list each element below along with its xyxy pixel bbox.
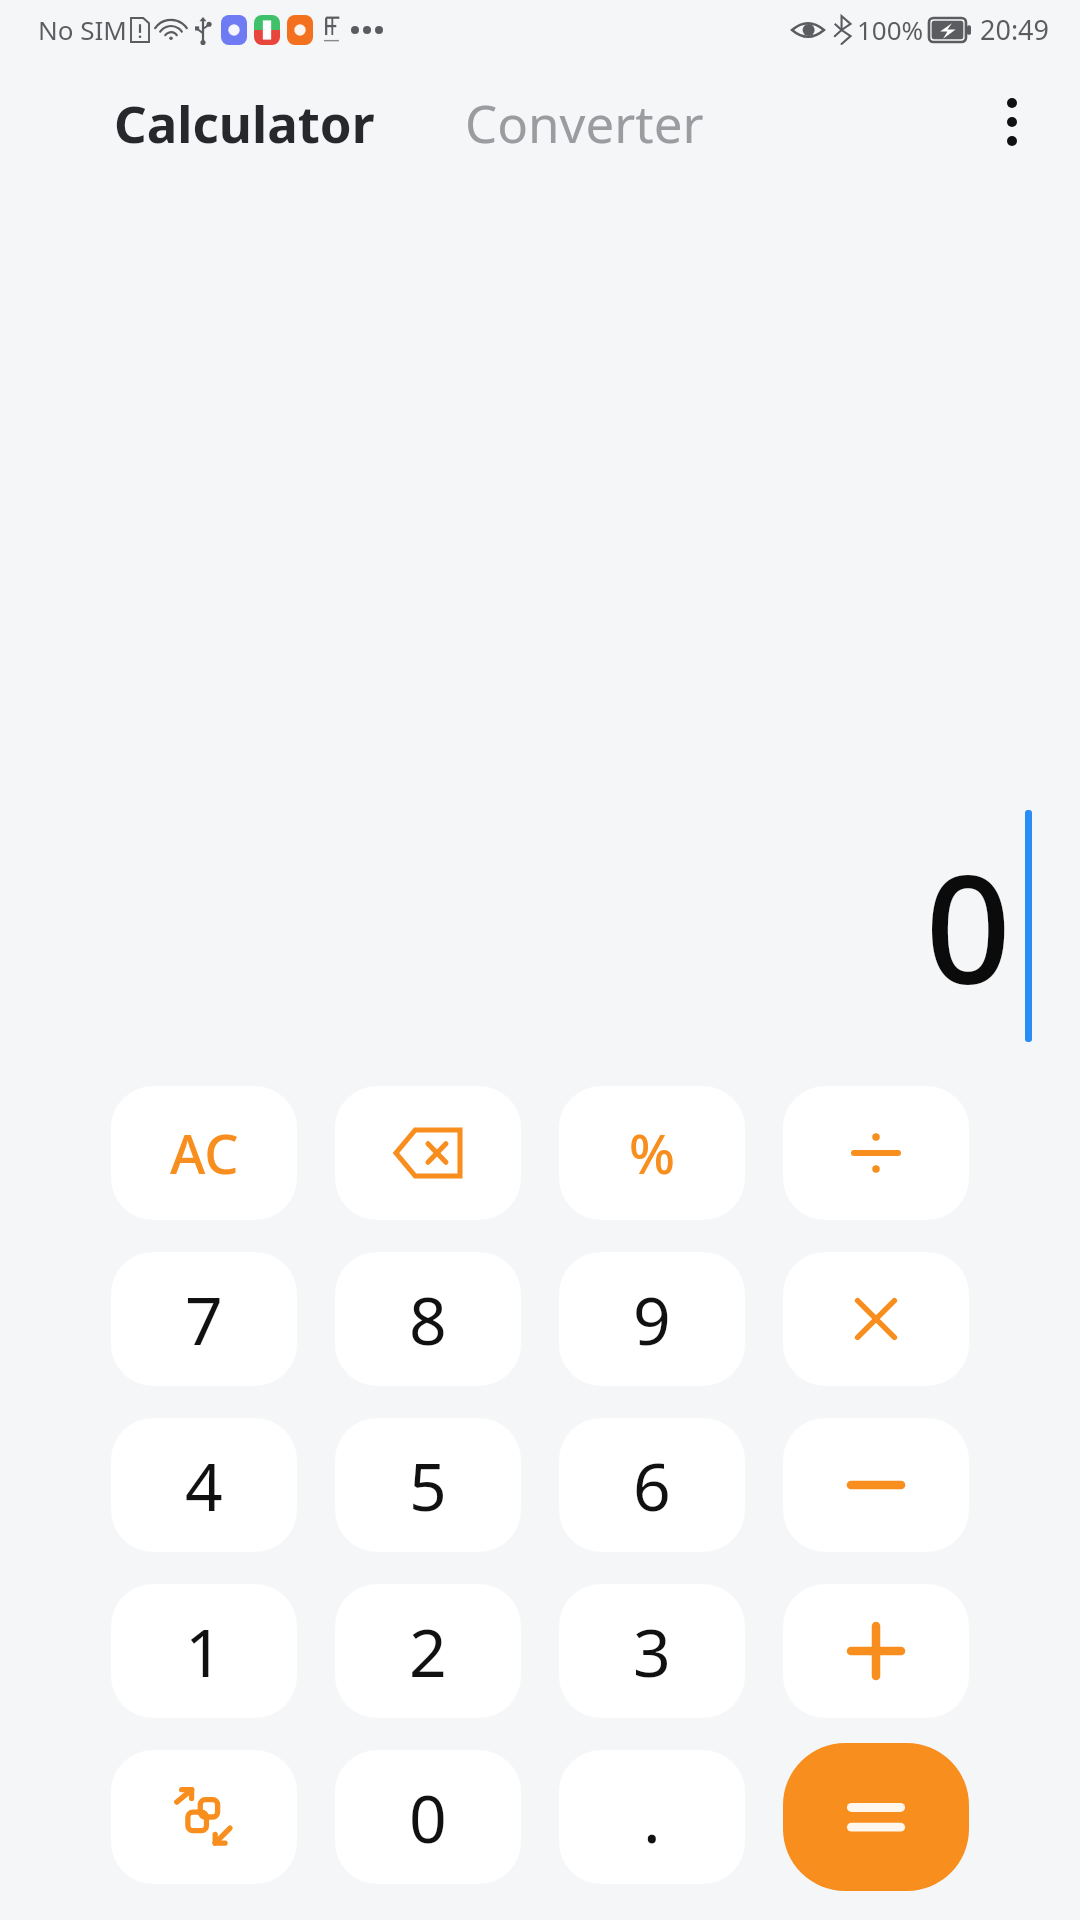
button[interactable]: 6 xyxy=(559,1418,745,1552)
staticText: 8 xyxy=(409,1274,447,1364)
button[interactable]: 0 xyxy=(335,1750,521,1884)
button[interactable]: Minus xyxy=(783,1418,969,1552)
button[interactable]: AC xyxy=(111,1086,297,1220)
staticText: % xyxy=(629,1116,676,1190)
button[interactable]: More options xyxy=(968,78,1056,166)
staticText: 9 xyxy=(633,1274,671,1364)
staticText: . xyxy=(643,1772,661,1862)
staticText: 7 xyxy=(185,1274,223,1364)
button[interactable]: Plus xyxy=(783,1584,969,1718)
button[interactable]: Equals xyxy=(783,1743,969,1891)
staticText: 20:49 xyxy=(980,11,1050,48)
staticText: AC xyxy=(170,1116,239,1190)
button[interactable]: Calculator xyxy=(110,80,379,165)
staticText: Calculator xyxy=(114,88,375,157)
button[interactable]: Multiply xyxy=(783,1252,969,1386)
button[interactable]: 5 xyxy=(335,1418,521,1552)
staticText: Converter xyxy=(465,88,704,157)
staticText: 2 xyxy=(409,1606,447,1696)
staticText: 4 xyxy=(185,1440,223,1530)
button[interactable]: 4 xyxy=(111,1418,297,1552)
button[interactable]: Backspace xyxy=(335,1086,521,1220)
staticText: 100% xyxy=(857,12,924,47)
button[interactable]: Divide xyxy=(783,1086,969,1220)
staticText: 1 xyxy=(185,1606,223,1696)
button[interactable]: . xyxy=(559,1750,745,1884)
button[interactable]: Convert units xyxy=(111,1750,297,1884)
staticText: 5 xyxy=(409,1440,447,1530)
staticText: No SIM xyxy=(38,12,127,47)
button[interactable]: 9 xyxy=(559,1252,745,1386)
button[interactable]: 8 xyxy=(335,1252,521,1386)
staticText: 6 xyxy=(633,1440,671,1530)
button[interactable]: 7 xyxy=(111,1252,297,1386)
button[interactable]: Converter xyxy=(461,80,708,165)
button[interactable]: % xyxy=(559,1086,745,1220)
staticText: 0 xyxy=(925,824,1011,1028)
staticText: 0 xyxy=(409,1772,447,1862)
button[interactable]: 2 xyxy=(335,1584,521,1718)
button[interactable]: 3 xyxy=(559,1584,745,1718)
button[interactable]: 1 xyxy=(111,1584,297,1718)
staticText: 3 xyxy=(633,1606,671,1696)
